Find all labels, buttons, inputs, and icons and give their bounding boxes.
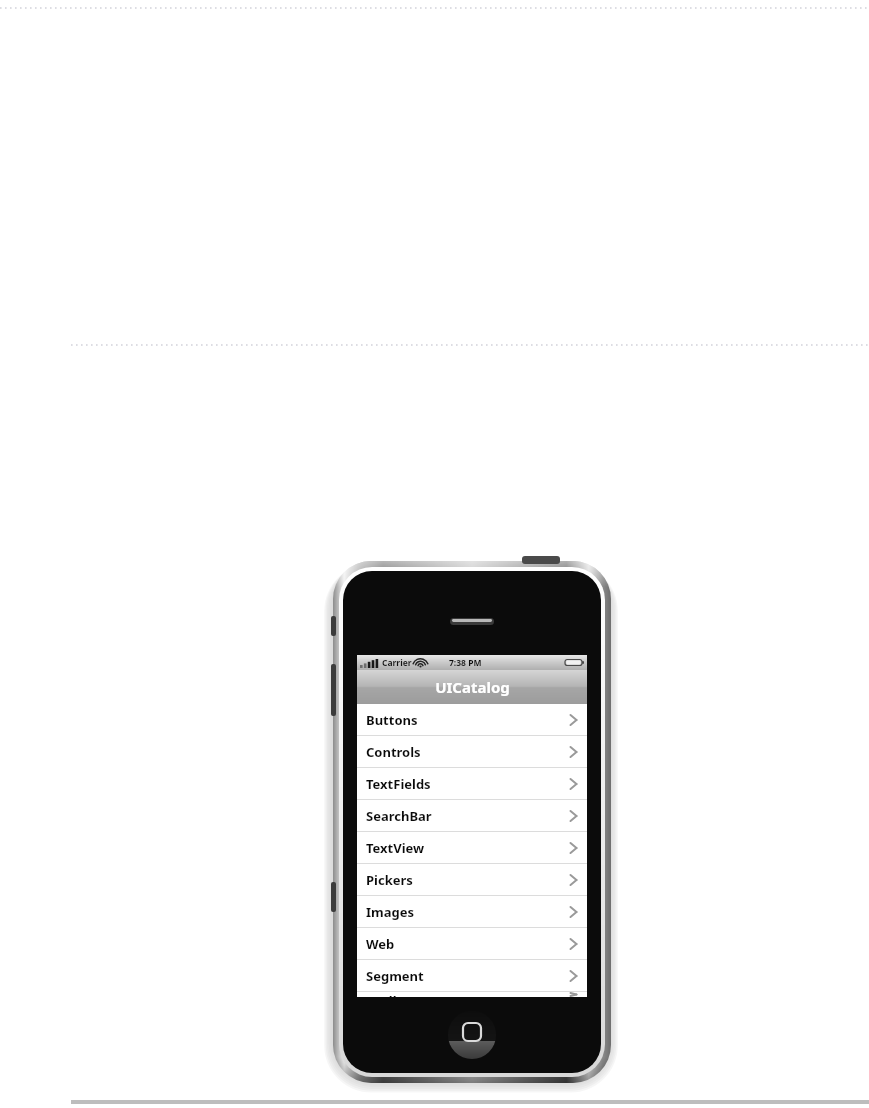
- button[interactable]: TextFields: [357, 768, 587, 799]
- staticText: Web: [366, 935, 395, 953]
- staticText: SearchBar: [366, 807, 432, 825]
- button[interactable]: Pickers: [357, 864, 587, 895]
- staticText: Pickers: [366, 871, 413, 889]
- button[interactable]: Buttons: [357, 704, 587, 735]
- button[interactable]: Web: [357, 928, 587, 959]
- button[interactable]: Toolbar: [357, 992, 587, 997]
- staticText: TextFields: [366, 775, 431, 793]
- staticText: Images: [366, 903, 415, 921]
- staticText: Toolbar: [366, 992, 415, 997]
- button[interactable]: Controls: [357, 736, 587, 767]
- button[interactable]: TextView: [357, 832, 587, 863]
- staticText: UICatalog: [435, 677, 510, 697]
- button[interactable]: SearchBar: [357, 800, 587, 831]
- staticText: Buttons: [366, 711, 418, 729]
- button[interactable]: Segment: [357, 960, 587, 991]
- button[interactable]: Home: [448, 1011, 496, 1059]
- staticText: Controls: [366, 743, 421, 761]
- button[interactable]: Images: [357, 896, 587, 927]
- staticText: Segment: [366, 967, 424, 985]
- staticText: 7:38 PM: [449, 657, 482, 669]
- staticText: TextView: [366, 839, 425, 857]
- staticText: Carrier: [382, 657, 412, 669]
